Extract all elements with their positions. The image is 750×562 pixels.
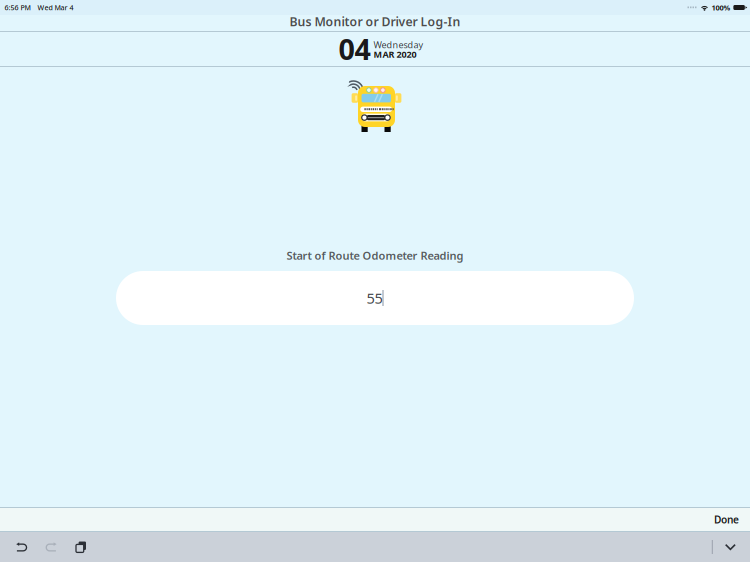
staticText: MAR 2020 [373, 48, 416, 60]
button[interactable]: Undo [7, 536, 36, 558]
staticText: Done [714, 513, 739, 526]
staticText: 6:56 PM [4, 3, 30, 12]
staticText: Wed Mar 4 [37, 3, 73, 12]
button[interactable]: Hide keyboard [713, 534, 750, 560]
staticText: Start of Route Odometer Reading [286, 248, 463, 263]
staticText: 100% [711, 2, 730, 13]
button[interactable]: Redo [36, 536, 66, 558]
button[interactable]: Done [703, 509, 750, 530]
staticText: Wednesday [373, 38, 423, 51]
staticText: Bus Monitor or Driver Log-In [289, 13, 460, 30]
staticText: 55 [366, 288, 382, 308]
button[interactable]: Paste [66, 536, 95, 557]
staticText: 04 [338, 29, 370, 68]
